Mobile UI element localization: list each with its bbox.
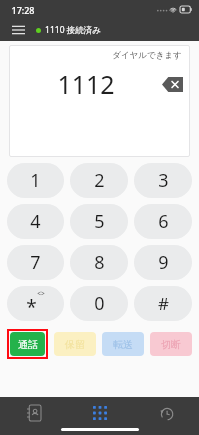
button[interactable]: 8 xyxy=(70,245,128,280)
button[interactable]: 9 xyxy=(134,245,192,280)
staticText: 2 xyxy=(94,168,105,193)
staticText: 保留 xyxy=(65,338,85,351)
staticText: 5 xyxy=(94,209,105,234)
button[interactable]: 2 xyxy=(70,163,128,198)
staticText: 8 xyxy=(94,250,105,275)
button[interactable]: 1 xyxy=(7,163,64,198)
staticText: 1 xyxy=(30,168,41,193)
button[interactable]: Backspace xyxy=(162,77,183,92)
staticText: 7 xyxy=(30,250,41,275)
button[interactable]: 7 xyxy=(7,245,64,280)
staticText: * xyxy=(26,294,37,320)
button[interactable]: 転送 xyxy=(102,332,144,356)
button[interactable]: 6 xyxy=(134,204,192,239)
staticText: 0 xyxy=(94,291,105,316)
button[interactable]: 保留 xyxy=(54,332,96,356)
staticText: 1110 接続済み xyxy=(45,24,101,36)
staticText: # xyxy=(158,292,169,315)
staticText: 通話 xyxy=(18,338,38,351)
button[interactable]: Keypad xyxy=(67,400,133,426)
button[interactable]: 5 xyxy=(70,204,128,239)
staticText: 3 xyxy=(158,168,169,193)
staticText: 転送 xyxy=(113,338,133,351)
button[interactable]: 4 xyxy=(7,204,64,239)
button[interactable]: 切断 xyxy=(150,332,192,356)
staticText: 4 xyxy=(30,209,41,234)
staticText: <> xyxy=(37,289,45,298)
staticText: 9 xyxy=(158,250,169,275)
staticText: 6 xyxy=(158,209,169,234)
button[interactable]: 0 xyxy=(70,286,128,321)
staticText: 1112 xyxy=(57,67,115,101)
button[interactable]: Menu xyxy=(8,20,28,40)
button[interactable]: # xyxy=(134,286,192,321)
staticText: 切断 xyxy=(161,338,181,351)
staticText: ダイヤルできます xyxy=(112,50,182,61)
button[interactable]: 通話 xyxy=(10,332,45,356)
button[interactable]: Contacts xyxy=(0,400,67,426)
button[interactable]: * xyxy=(7,286,64,321)
button[interactable]: History xyxy=(133,400,199,426)
staticText: 17:28 xyxy=(11,4,35,16)
button[interactable]: 3 xyxy=(134,163,192,198)
